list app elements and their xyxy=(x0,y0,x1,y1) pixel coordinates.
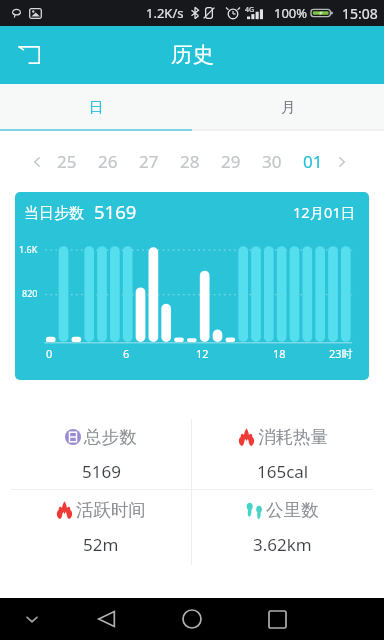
button[interactable]: 月 xyxy=(192,84,384,129)
staticText: 公里数 xyxy=(266,499,319,521)
button[interactable]: Hide navigation bar xyxy=(18,598,46,640)
button[interactable]: 27 xyxy=(128,131,169,192)
staticText: 15:08 xyxy=(342,4,378,23)
staticText: 总步数 xyxy=(84,426,137,448)
staticText: 30 xyxy=(262,150,282,173)
staticText: 月 xyxy=(281,98,296,116)
button[interactable]: 26 xyxy=(87,131,128,192)
staticText: 29 xyxy=(221,150,241,173)
button[interactable]: 总步数 xyxy=(11,419,191,489)
staticText: 当日步数 xyxy=(24,204,84,223)
staticText: 23时 xyxy=(329,346,353,361)
button[interactable]: Next week xyxy=(333,147,351,177)
staticText: 活跃时间 xyxy=(76,499,146,521)
button[interactable]: 28 xyxy=(169,131,210,192)
button[interactable]: Back xyxy=(0,26,57,84)
staticText: 18 xyxy=(273,346,286,361)
button[interactable]: 25 xyxy=(46,131,87,192)
staticText: 25 xyxy=(57,150,77,173)
staticText: 820 xyxy=(22,287,38,299)
button[interactable]: 消耗热量 xyxy=(192,419,373,489)
staticText: 5169 xyxy=(82,460,121,483)
button[interactable]: 日 xyxy=(0,84,192,129)
staticText: 12 xyxy=(196,346,209,361)
button[interactable]: Home xyxy=(176,598,208,640)
button[interactable]: 01 xyxy=(292,131,333,192)
button[interactable]: 公里数 xyxy=(192,490,373,565)
staticText: 消耗热量 xyxy=(258,426,328,448)
button[interactable]: Previous week xyxy=(28,147,46,177)
staticText: 日 xyxy=(89,98,104,116)
staticText: 1.2K/s xyxy=(146,4,184,22)
staticText: 26 xyxy=(98,150,118,173)
staticText: 5169 xyxy=(94,199,137,224)
button[interactable]: 当日步数 xyxy=(15,192,369,380)
button[interactable]: Recent apps xyxy=(261,598,293,640)
staticText: 历史 xyxy=(171,41,214,68)
button[interactable]: 30 xyxy=(251,131,292,192)
staticText: 100% xyxy=(274,4,308,22)
staticText: 01 xyxy=(303,150,323,173)
staticText: 12月01日 xyxy=(293,202,356,222)
staticText: 165cal xyxy=(257,460,309,483)
button[interactable]: 29 xyxy=(210,131,251,192)
staticText: 1.6K xyxy=(19,243,38,255)
staticText: 6 xyxy=(123,346,130,361)
staticText: 52m xyxy=(83,533,119,556)
staticText: 3.62km xyxy=(253,533,312,556)
staticText: 4G xyxy=(245,5,255,15)
staticText: 27 xyxy=(139,150,159,173)
button[interactable]: 活跃时间 xyxy=(11,490,191,565)
button[interactable]: Back xyxy=(90,598,122,640)
staticText: 28 xyxy=(180,150,200,173)
staticText: 0 xyxy=(46,346,53,361)
